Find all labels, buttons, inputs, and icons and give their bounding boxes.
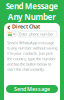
staticText: Any Number <box>8 11 56 22</box>
staticText: Send Message <box>6 1 58 11</box>
button[interactable]: ‹ <box>4 23 60 30</box>
staticText: Send a WhatsApp message to any number wi… <box>7 40 57 72</box>
staticText: Direct Chat <box>12 23 40 30</box>
staticText: ‹ <box>7 20 10 33</box>
staticText: Send Message <box>14 85 50 93</box>
staticText: Enter phone number <box>19 31 54 37</box>
staticText: ▾ <box>13 32 15 36</box>
button[interactable]: Send Message <box>4 85 60 93</box>
button[interactable]: Country code <box>7 31 16 37</box>
